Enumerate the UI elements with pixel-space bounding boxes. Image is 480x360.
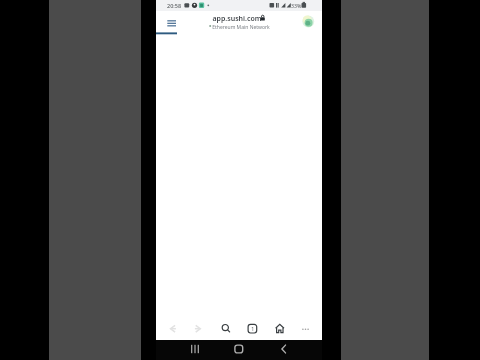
button[interactable] — [164, 320, 181, 337]
button[interactable] — [164, 14, 180, 30]
button[interactable] — [231, 341, 248, 359]
staticText: 20:58 — [167, 2, 182, 9]
button[interactable] — [302, 15, 315, 28]
button[interactable] — [212, 12, 268, 30]
button[interactable] — [276, 341, 293, 359]
staticText: Ethereum Main Network — [158, 24, 324, 31]
button[interactable] — [217, 320, 234, 337]
button[interactable] — [186, 341, 203, 359]
staticText: 33% — [291, 2, 302, 9]
staticText: app.sushi.com — [154, 14, 320, 24]
button[interactable] — [190, 320, 207, 337]
button[interactable] — [297, 320, 314, 337]
button[interactable] — [244, 320, 261, 337]
staticText: 1 — [251, 325, 255, 333]
button[interactable] — [271, 320, 288, 337]
